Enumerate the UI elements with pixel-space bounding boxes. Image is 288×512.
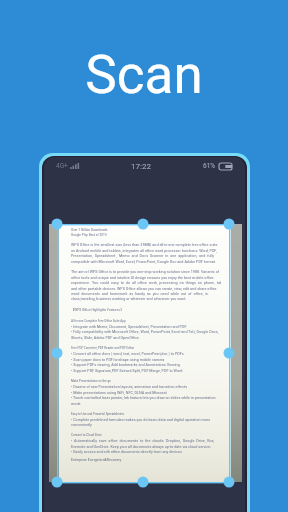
staticText: word documents and homework as handy as … <box>71 292 221 296</box>
staticText: class,traveling, business working or whe… <box>71 297 221 301</box>
staticText: and other portable devices. WPS Office a… <box>71 287 221 291</box>
staticText: Connect to Cloud Drive <box>71 433 221 437</box>
staticText: • Integrate with Memo, Document, Spreads… <box>71 325 221 329</box>
staticText: mode <box>71 402 221 406</box>
staticText: • Make presentations using WiFi, NFC, DL… <box>71 391 221 395</box>
staticText: on Android mobile and tablets, integrate… <box>71 249 221 253</box>
staticText: WPS Office is the smallest size (less th… <box>71 243 221 247</box>
staticText: 4G+ <box>56 162 68 170</box>
staticText: Easy to Use and Powerful Spreadsheets <box>71 412 221 416</box>
staticText: • Support PDFs viewing, Add bookmarks an… <box>71 363 221 367</box>
staticText: experience. You could easy to do all off… <box>71 281 221 285</box>
staticText: 61% <box>203 162 216 170</box>
staticText: • Convert all office docs ( word, text, … <box>71 352 221 356</box>
staticText: Scan <box>0 44 288 106</box>
staticText: • Fully compatibility with Microsoft Off… <box>71 330 221 334</box>
staticText: Enterprise Encryption&Recovery <box>71 458 221 462</box>
staticText: 17:22 <box>131 162 151 171</box>
staticText: Presentation, Spreadsheet , Memo and Doc… <box>71 254 221 258</box>
staticText: Free PDF Converter, PDF Reader and PDF E… <box>71 346 221 350</box>
staticText: • Complete predefined formulas makes you… <box>71 418 221 422</box>
staticText: • Automatically save office documents to… <box>71 439 221 443</box>
other: Crop region <box>0 0 288 512</box>
staticText: Make Presentations on the go <box>71 379 221 383</box>
staticText: • Easily access and edit office document… <box>71 450 221 454</box>
staticText: • Scan paper docs to PDF/onshape using m… <box>71 358 221 362</box>
staticText: The aim of WPS Office is to provide you … <box>71 270 221 274</box>
staticText: • Dozens of new Presentation layouts, an… <box>71 385 221 389</box>
staticText: Sheets, Slide, Adobe PDF and OpenOffice. <box>71 336 221 340</box>
staticText: office tools and unique and intuitive UI… <box>71 276 221 280</box>
staticText: • Support PDF Signature,PDF Extract/Spli… <box>71 369 221 373</box>
staticText: compatible with Microsoft Word, Excel, P… <box>71 260 221 264</box>
staticText: Evernote and OneDrive. Keep your all doc… <box>71 445 221 449</box>
staticText: 【WPS Office Highlights Features】 <box>71 308 221 312</box>
staticText: Over 1 Billion Downloads <box>71 228 221 232</box>
staticText: Google Play Best of 2015 <box>71 233 221 237</box>
staticText: • Touch controlled laser pointer, Ink fe… <box>71 396 221 400</box>
staticText: All-in-one Complete Free Office Suite Ap… <box>71 319 221 323</box>
staticText: conveniently <box>71 423 221 427</box>
